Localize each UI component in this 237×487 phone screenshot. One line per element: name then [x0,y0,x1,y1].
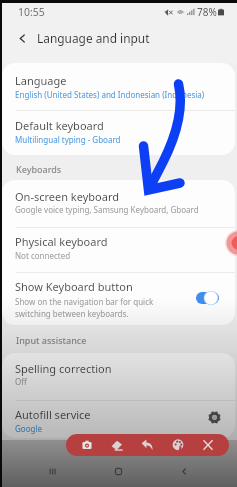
staticText: Language and input [37,30,150,46]
staticText: On-screen keyboard [15,189,120,204]
button[interactable] [2,353,235,400]
staticText: English (United States) and Indonesian (… [15,89,205,100]
staticText: 78% [197,5,217,19]
button[interactable] [2,227,235,272]
staticText: Show on the navigation bar for quick swi… [15,296,154,319]
button[interactable]: Home [102,455,134,487]
staticText: Google voice typing, Samsung Keyboard, G… [15,204,199,215]
staticText: Input assistance [16,334,87,346]
staticText: Keyboards [16,163,62,175]
staticText: Spelling correction [15,361,112,376]
staticText: Show Keyboard button [15,279,133,294]
button[interactable]: Eraser [106,434,128,456]
button[interactable]: Recents [36,455,68,487]
staticText: Google [15,423,42,434]
button[interactable] [2,110,235,155]
button[interactable]: Back [168,455,200,487]
staticText: Language [15,73,67,88]
staticText: Default keyboard [15,118,104,133]
staticText: Off [15,376,27,387]
button[interactable] [2,63,235,110]
staticText: Autofill service [15,407,91,422]
button[interactable]: Show Keyboard button toggle [190,286,226,310]
button[interactable]: Color palette [167,434,189,456]
button[interactable] [2,272,235,325]
button[interactable]: Autofill service settings [202,405,226,429]
button[interactable]: Close [197,434,219,456]
staticText: Multilingual typing - Gboard [15,134,121,145]
button[interactable]: Capture [76,434,98,456]
button[interactable] [2,180,235,227]
staticText: Not connected [15,250,71,261]
staticText: Physical keyboard [15,234,108,249]
button[interactable]: Navigate up [10,26,34,50]
button[interactable]: Undo [136,434,158,456]
button[interactable] [2,400,235,438]
staticText: 10:55 [18,5,45,19]
